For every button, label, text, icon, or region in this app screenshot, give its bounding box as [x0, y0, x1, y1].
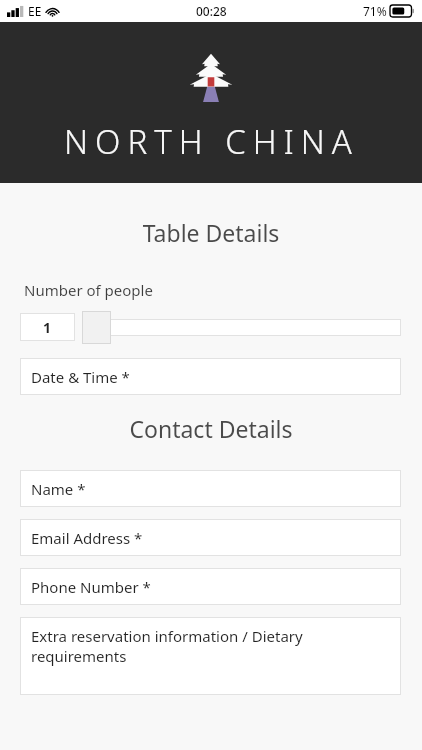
staticText: Name * [31, 479, 86, 499]
staticText: 00:28 [196, 3, 227, 19]
staticText: Date & Time * [31, 367, 130, 387]
staticText: 71% [363, 3, 387, 19]
staticText: Table Details [0, 217, 422, 248]
button[interactable]: 1 [20, 313, 75, 341]
button[interactable]: Number of people slider [82, 310, 401, 344]
staticText: Extra reservation information / Dietary … [31, 626, 303, 666]
button[interactable]: Date & Time * [20, 358, 401, 395]
staticText: NORTH CHINA [64, 119, 359, 164]
button[interactable]: Email Address * [20, 519, 401, 556]
staticText: Phone Number * [31, 577, 151, 597]
button[interactable]: Name * [20, 470, 401, 507]
button[interactable]: Extra reservation information / Dietary … [20, 617, 401, 695]
staticText: Contact Details [0, 413, 422, 444]
staticText: Number of people [24, 280, 153, 300]
staticText: EE [28, 3, 42, 19]
button[interactable]: Phone Number * [20, 568, 401, 605]
staticText: 1 [43, 318, 52, 337]
staticText: Email Address * [31, 528, 143, 548]
